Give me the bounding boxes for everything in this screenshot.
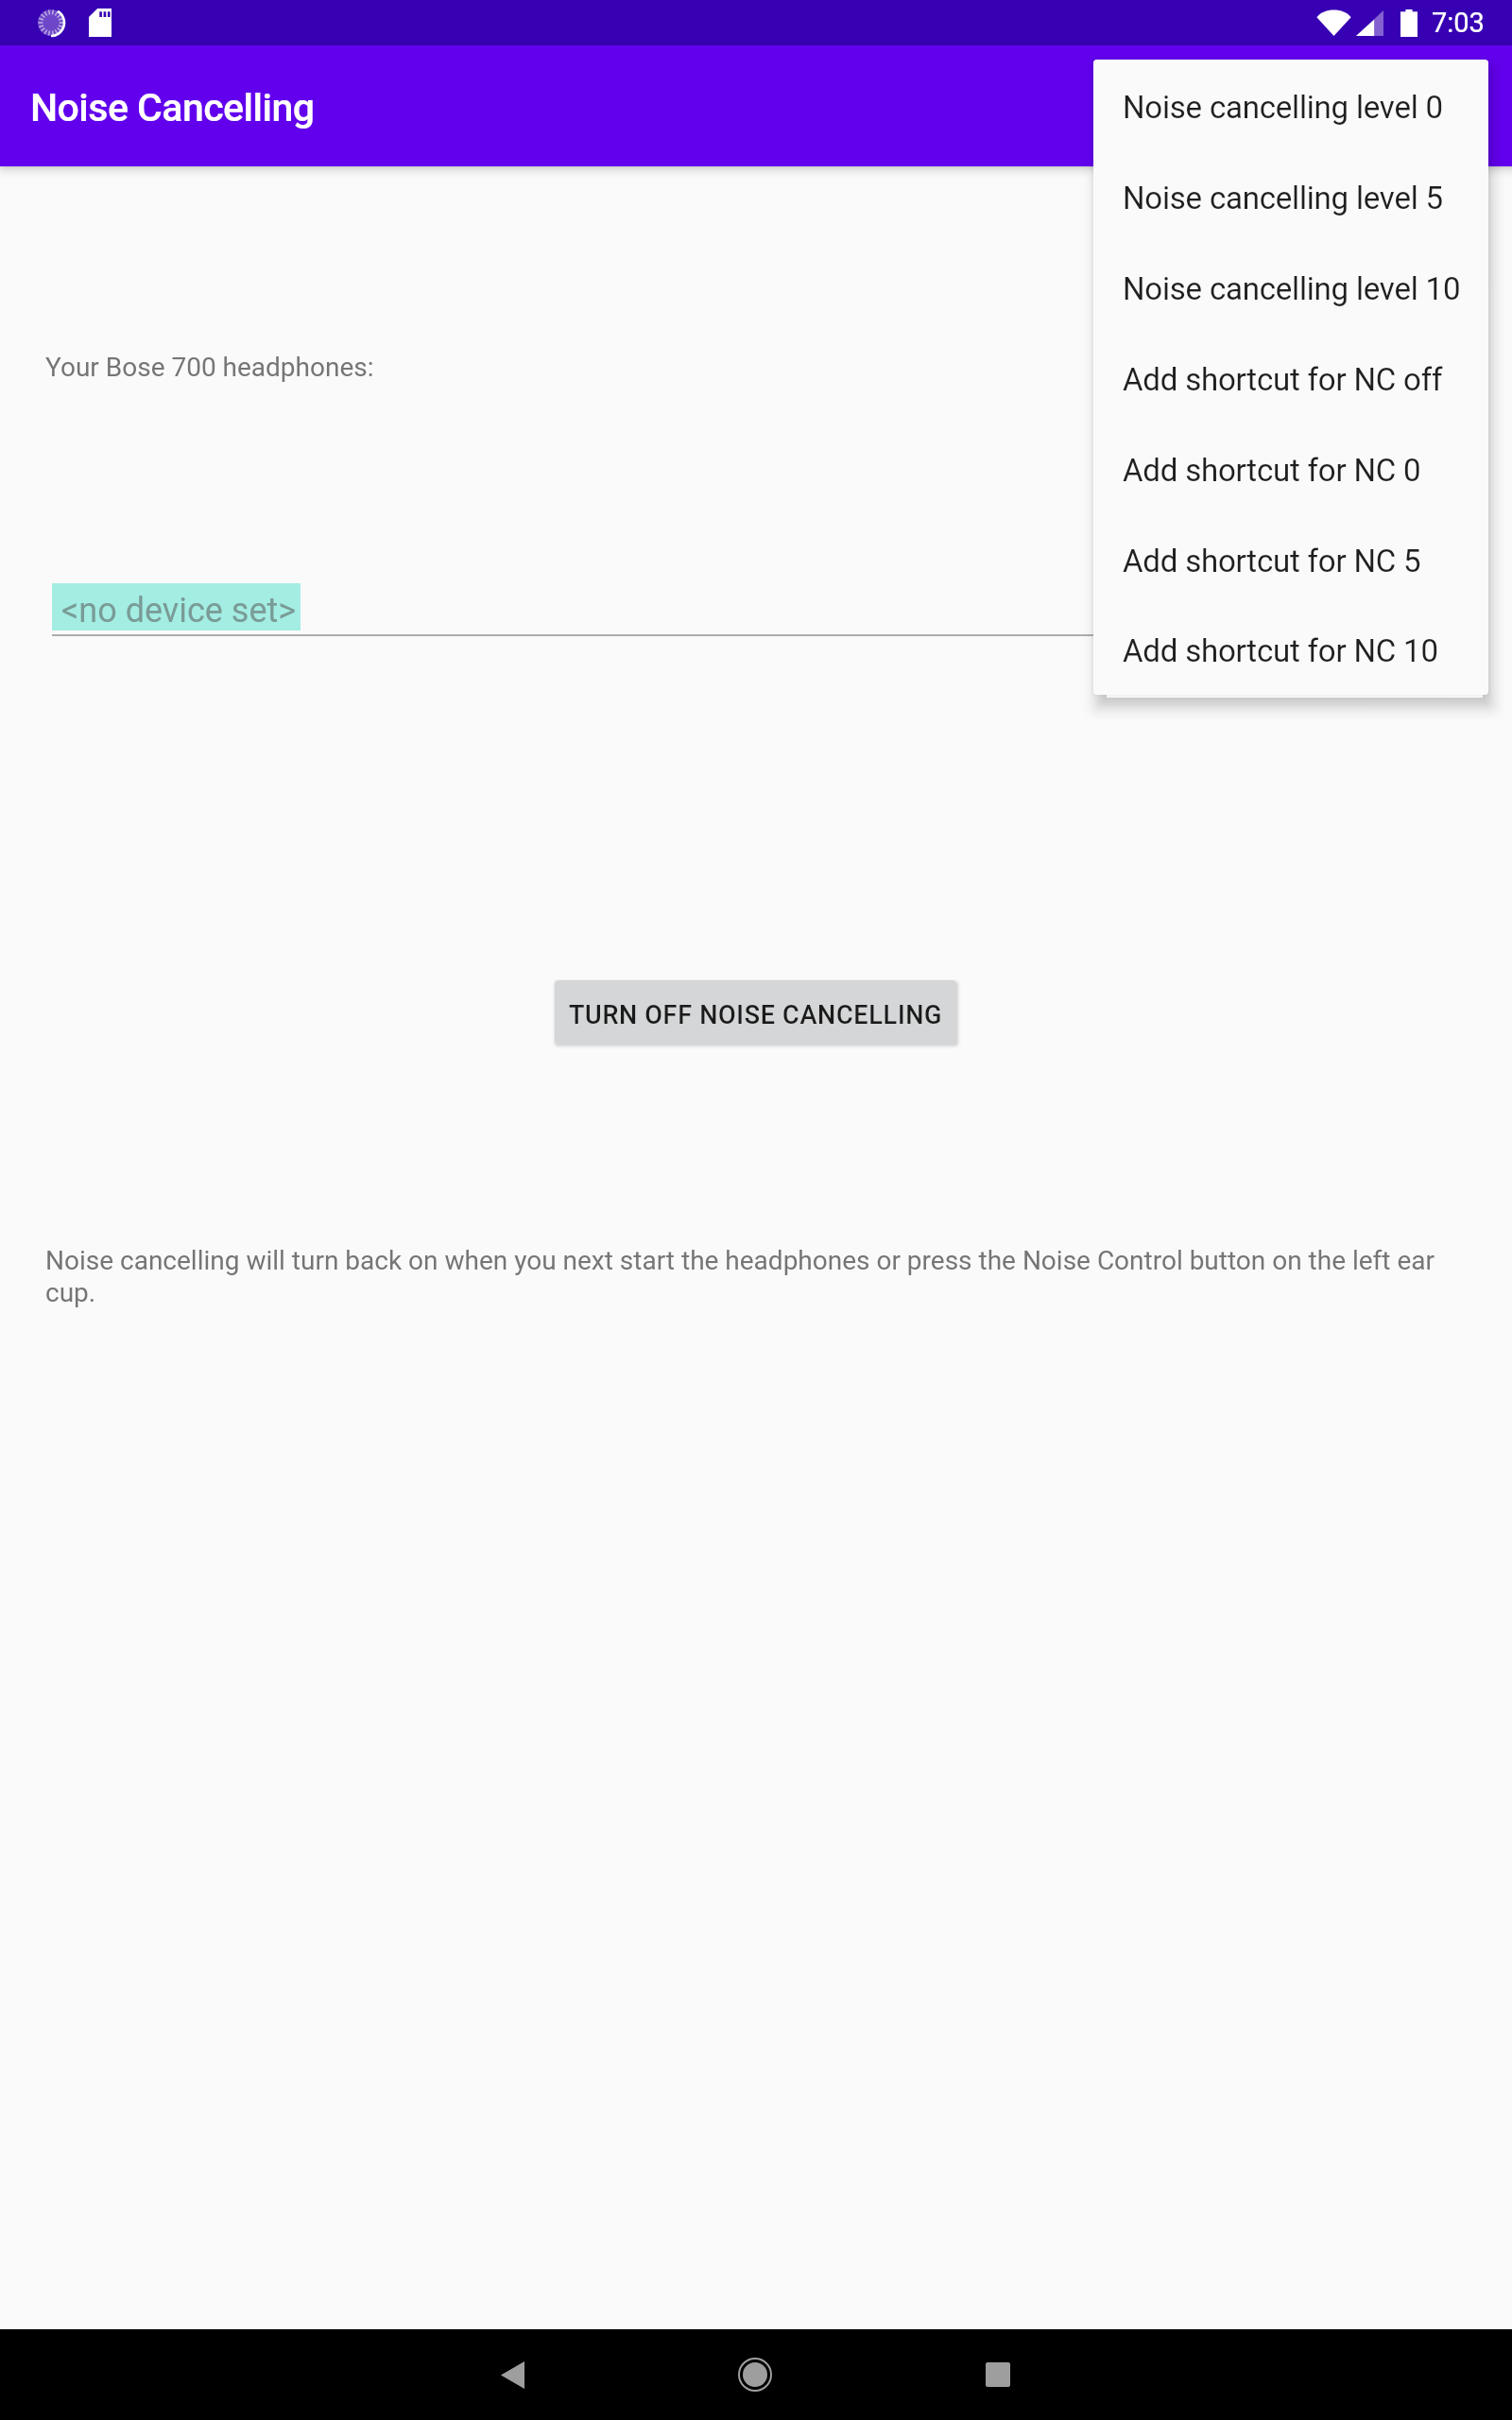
button[interactable]: Add shortcut for NC 5 xyxy=(1093,515,1488,606)
button[interactable]: Recent apps xyxy=(953,2329,1043,2420)
button[interactable]: TURN OFF NOISE CANCELLING xyxy=(555,980,956,1045)
staticText: Add shortcut for NC 5 xyxy=(1123,543,1421,579)
button[interactable]: Noise cancelling level 5 xyxy=(1093,152,1488,243)
button[interactable]: Add shortcut for NC off xyxy=(1093,334,1488,424)
staticText: Noise cancelling will turn back on when … xyxy=(45,1245,1446,1308)
staticText: Noise Cancelling xyxy=(30,85,315,130)
button[interactable]: Back xyxy=(467,2329,558,2420)
staticText: Your Bose 700 headphones: xyxy=(45,352,374,383)
staticText: Noise cancelling level 0 xyxy=(1123,89,1443,126)
staticText: <no device set> xyxy=(61,591,297,631)
staticText: 7:03 xyxy=(1432,7,1485,39)
staticText: TURN OFF NOISE CANCELLING xyxy=(569,1000,943,1030)
button[interactable]: <no device set> xyxy=(52,583,301,631)
staticText: Add shortcut for NC off xyxy=(1123,361,1443,398)
staticText: Noise cancelling level 10 xyxy=(1123,270,1461,307)
button[interactable]: Home xyxy=(710,2329,800,2420)
staticText: Add shortcut for NC 0 xyxy=(1123,452,1421,489)
button[interactable]: Noise cancelling level 10 xyxy=(1093,243,1488,334)
button[interactable]: Noise cancelling level 0 xyxy=(1093,61,1488,152)
button[interactable]: Add shortcut for NC 10 xyxy=(1093,606,1488,695)
button[interactable]: Add shortcut for NC 0 xyxy=(1093,424,1488,515)
staticText: Noise cancelling level 5 xyxy=(1123,180,1443,216)
staticText: Add shortcut for NC 10 xyxy=(1123,632,1438,669)
